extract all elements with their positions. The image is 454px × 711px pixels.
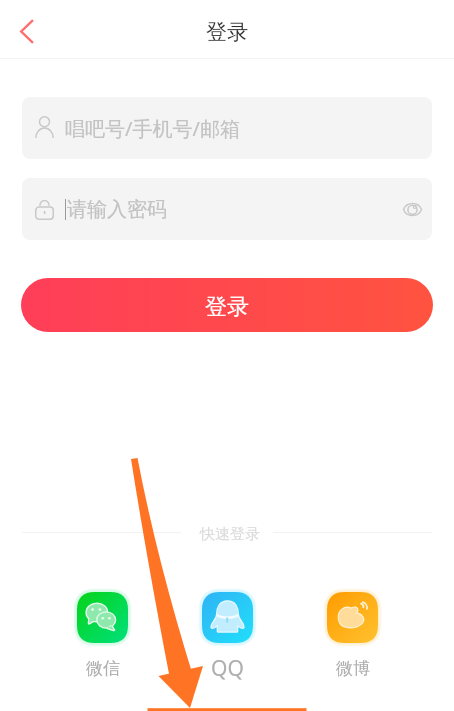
button[interactable]: 微博 — [327, 592, 378, 679]
staticText: 微信 — [86, 658, 120, 679]
staticText: 微博 — [336, 658, 370, 679]
button[interactable]: 微信 — [77, 592, 128, 679]
staticText: 登录 — [205, 293, 249, 321]
staticText: 登录 — [206, 19, 248, 45]
button[interactable]: 登录 — [21, 278, 433, 332]
staticText: 请输入密码 — [67, 197, 167, 222]
button[interactable]: QQ — [202, 592, 253, 683]
staticText: 快速登录 — [200, 525, 260, 544]
staticText: QQ — [211, 654, 244, 683]
button[interactable]: 唱吧号/手机号/邮箱 — [22, 97, 432, 159]
staticText: 唱吧号/手机号/邮箱 — [65, 115, 240, 142]
button[interactable]: Back — [3, 7, 51, 55]
button[interactable]: 请输入密码 — [22, 178, 432, 240]
button[interactable]: Show password — [397, 194, 427, 224]
